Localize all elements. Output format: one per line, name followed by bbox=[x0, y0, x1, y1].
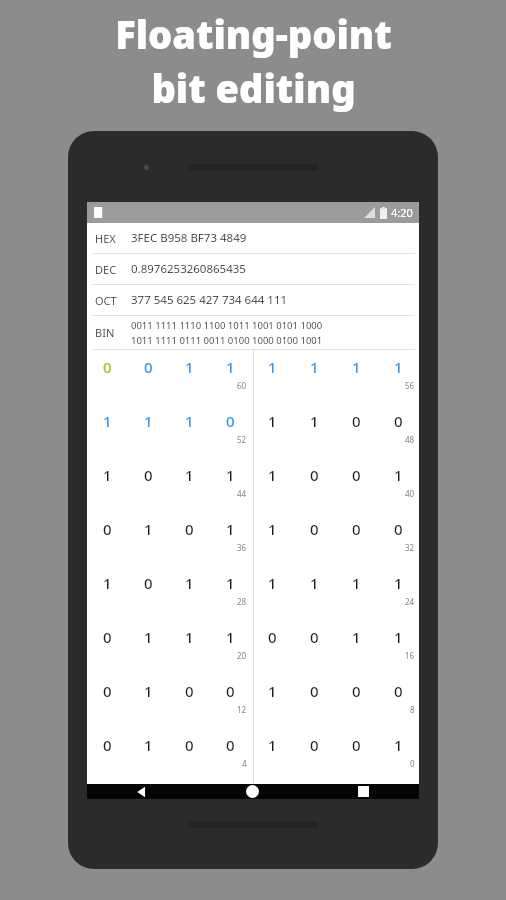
button[interactable]: 1 bbox=[377, 566, 419, 620]
button[interactable]: 1 bbox=[335, 620, 377, 674]
button[interactable]: 1 bbox=[128, 404, 169, 458]
button[interactable]: 0 bbox=[377, 404, 419, 458]
staticText: 20 bbox=[237, 650, 247, 661]
staticText: 0 bbox=[394, 411, 403, 431]
button[interactable]: 0 bbox=[169, 728, 210, 782]
button[interactable]: 0 bbox=[210, 404, 251, 458]
button[interactable]: Home bbox=[197, 784, 308, 799]
button[interactable]: 1 bbox=[128, 620, 169, 674]
button[interactable]: 0 bbox=[377, 512, 419, 566]
button[interactable]: 0 bbox=[169, 512, 210, 566]
button[interactable]: 1 bbox=[251, 566, 293, 620]
staticText: 0 bbox=[185, 519, 194, 539]
staticText: 1 bbox=[268, 735, 277, 755]
button[interactable]: 1 bbox=[377, 728, 419, 782]
button[interactable]: 1 bbox=[210, 350, 251, 404]
button[interactable]: 1 bbox=[169, 566, 210, 620]
button[interactable]: Recent apps bbox=[308, 784, 419, 799]
staticText: 0 bbox=[310, 465, 319, 485]
button[interactable]: 0 bbox=[87, 674, 128, 728]
button[interactable]: 0 bbox=[87, 512, 128, 566]
button[interactable]: 0 bbox=[335, 404, 377, 458]
button[interactable]: 0 bbox=[293, 512, 335, 566]
staticText: 52 bbox=[237, 434, 247, 445]
button[interactable]: 1 bbox=[210, 512, 251, 566]
button[interactable]: 0 bbox=[335, 674, 377, 728]
button[interactable]: 0 bbox=[293, 728, 335, 782]
staticText: 0 bbox=[144, 465, 153, 485]
staticText: 1 bbox=[352, 573, 361, 593]
button[interactable]: 1 bbox=[293, 404, 335, 458]
staticText: 1 bbox=[185, 573, 194, 593]
button[interactable]: 1 bbox=[169, 404, 210, 458]
staticText: 1 bbox=[226, 357, 235, 377]
button[interactable]: 0 bbox=[169, 674, 210, 728]
button[interactable]: 1 bbox=[293, 566, 335, 620]
staticText: 1 bbox=[185, 357, 194, 377]
button[interactable]: 1 bbox=[251, 728, 293, 782]
button[interactable]: 1 bbox=[335, 566, 377, 620]
staticText: 0 bbox=[226, 681, 235, 701]
button[interactable]: 1 bbox=[169, 458, 210, 512]
button[interactable]: 1 bbox=[251, 674, 293, 728]
button[interactable]: 0 bbox=[293, 458, 335, 512]
button[interactable]: 0 bbox=[293, 620, 335, 674]
button[interactable]: 1 bbox=[128, 512, 169, 566]
staticText: 1 bbox=[268, 573, 277, 593]
staticText: 1011 1111 0111 0011 0100 1000 0100 1001 bbox=[131, 334, 323, 347]
button[interactable]: 0 bbox=[128, 566, 169, 620]
button[interactable]: Back bbox=[87, 784, 197, 799]
button[interactable]: DEC bbox=[87, 254, 419, 284]
staticText: 1 bbox=[268, 357, 277, 377]
staticText: 48 bbox=[405, 434, 415, 445]
button[interactable]: BIN bbox=[87, 316, 419, 349]
button[interactable]: 1 bbox=[251, 404, 293, 458]
staticText: 36 bbox=[237, 542, 247, 553]
button[interactable]: 1 bbox=[251, 458, 293, 512]
staticText: 1 bbox=[310, 411, 319, 431]
button[interactable]: 1 bbox=[87, 458, 128, 512]
button[interactable]: 0 bbox=[87, 728, 128, 782]
button[interactable]: 0 bbox=[251, 620, 293, 674]
staticText: 32 bbox=[405, 542, 415, 553]
button[interactable]: 0 bbox=[335, 728, 377, 782]
staticText: 1 bbox=[352, 357, 361, 377]
button[interactable]: 0 bbox=[293, 674, 335, 728]
button[interactable]: 0 bbox=[87, 350, 128, 404]
button[interactable]: 0 bbox=[335, 512, 377, 566]
staticText: 0 bbox=[185, 735, 194, 755]
button[interactable]: 1 bbox=[169, 350, 210, 404]
button[interactable]: 1 bbox=[210, 458, 251, 512]
button[interactable]: 0 bbox=[210, 674, 251, 728]
button[interactable]: 0 bbox=[128, 458, 169, 512]
button[interactable]: HEX bbox=[87, 223, 419, 253]
button[interactable]: 0 bbox=[335, 458, 377, 512]
staticText: 0 bbox=[352, 735, 361, 755]
button[interactable]: 1 bbox=[377, 620, 419, 674]
button[interactable]: 1 bbox=[210, 620, 251, 674]
staticText: 0 bbox=[352, 465, 361, 485]
staticText: OCT bbox=[95, 293, 131, 308]
button[interactable]: 1 bbox=[251, 512, 293, 566]
button[interactable]: 1 bbox=[87, 566, 128, 620]
button[interactable]: 0 bbox=[210, 728, 251, 782]
button[interactable]: 1 bbox=[87, 404, 128, 458]
staticText: 0 bbox=[310, 735, 319, 755]
button[interactable]: 0 bbox=[377, 674, 419, 728]
button[interactable]: 0 bbox=[128, 350, 169, 404]
button[interactable]: 1 bbox=[377, 350, 419, 404]
staticText: DEC bbox=[95, 262, 131, 277]
button[interactable]: 1 bbox=[251, 350, 293, 404]
button[interactable]: 1 bbox=[377, 458, 419, 512]
staticText: 0 bbox=[103, 681, 112, 701]
button[interactable]: 1 bbox=[210, 566, 251, 620]
staticText: 0.8976253260865435 bbox=[131, 261, 246, 277]
button[interactable]: 0 bbox=[87, 620, 128, 674]
button[interactable]: 1 bbox=[169, 620, 210, 674]
button[interactable]: OCT bbox=[87, 285, 419, 315]
button[interactable]: 1 bbox=[128, 674, 169, 728]
button[interactable]: 1 bbox=[335, 350, 377, 404]
button[interactable]: 1 bbox=[128, 728, 169, 782]
button[interactable]: 1 bbox=[293, 350, 335, 404]
staticText: 12 bbox=[237, 704, 247, 715]
